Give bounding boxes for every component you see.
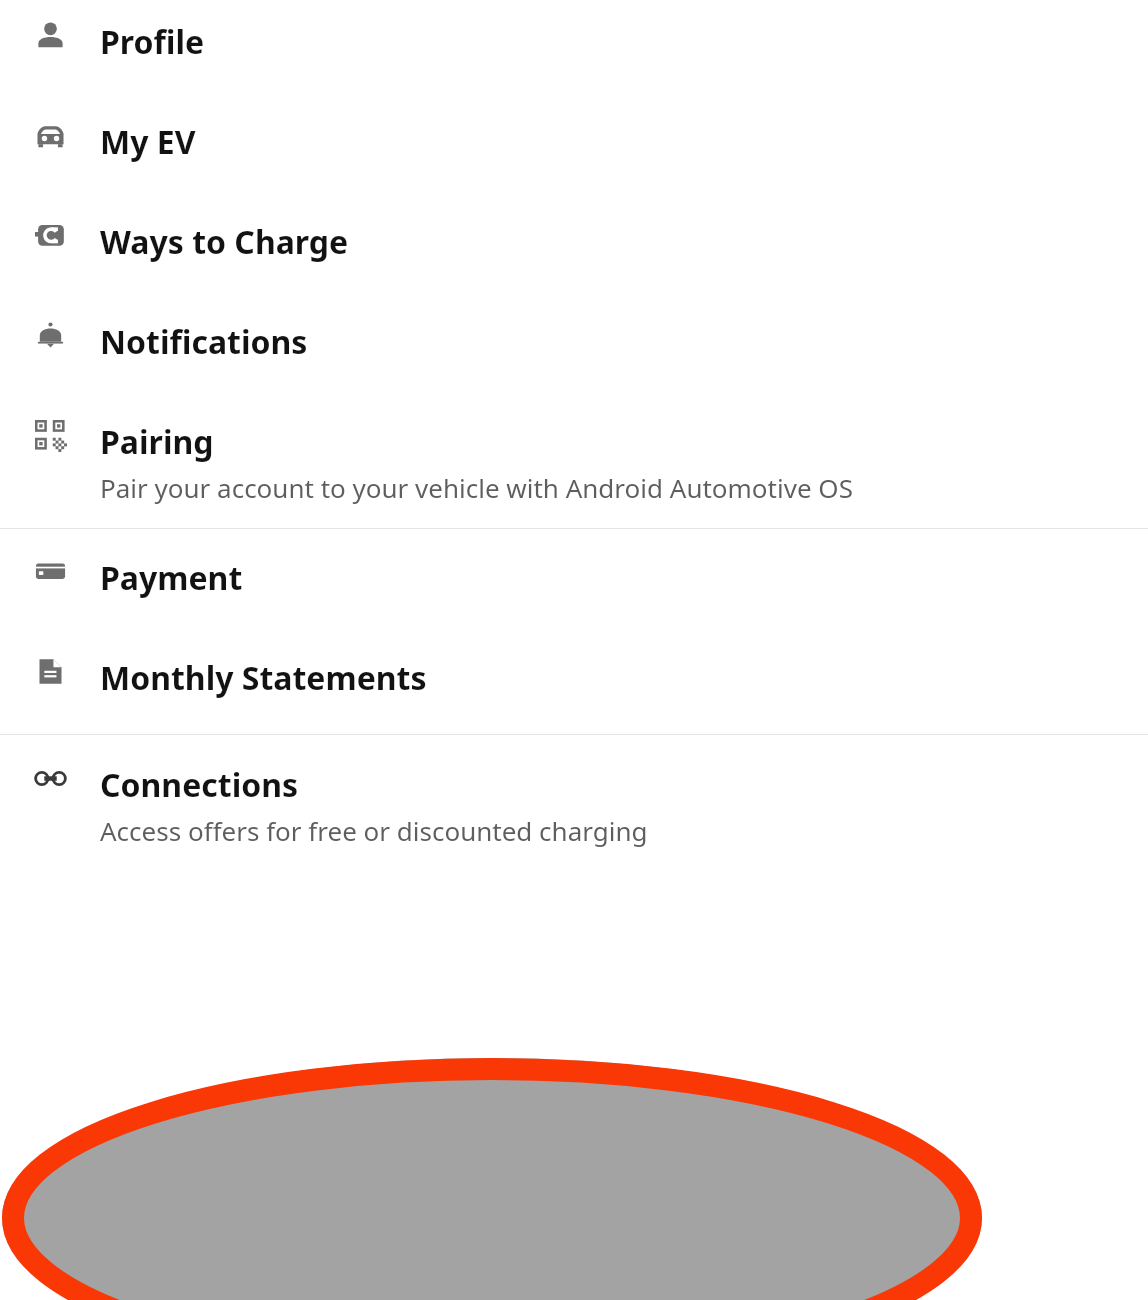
button[interactable]: Ways to Charge [0,220,1148,264]
button[interactable]: Monthly Statements [0,656,1148,700]
staticText: Monthly Statements [100,656,427,700]
staticText: Pair your account to your vehicle with A… [100,470,853,505]
button[interactable]: Pairing [0,420,1148,505]
button[interactable]: My EV [0,120,1148,164]
staticText: My EV [100,120,196,164]
staticText: Ways to Charge [100,220,349,264]
button[interactable]: Payment [0,556,1148,600]
staticText: Notifications [100,320,308,364]
button[interactable]: Profile [0,20,1148,64]
staticText: Access offers for free or discounted cha… [100,813,648,848]
button[interactable]: Notifications [0,320,1148,364]
staticText: Profile [100,20,205,64]
staticText: Connections [100,763,299,807]
staticText: Payment [100,556,243,600]
staticText: Pairing [100,420,214,464]
button[interactable]: Connections [0,763,1148,848]
